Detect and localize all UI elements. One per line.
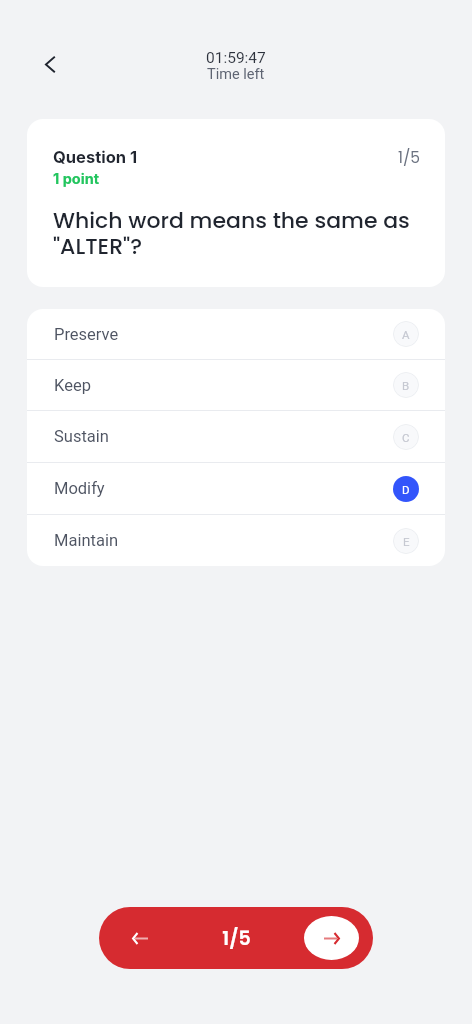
button[interactable]: Keep [27,360,445,410]
staticText: Modify [54,479,105,498]
staticText: Preserve [54,325,119,344]
staticText: Which word means the same as "ALTER"? [53,205,421,262]
staticText: E [403,535,410,548]
button[interactable]: Sustain [27,411,445,462]
staticText: Keep [54,376,91,395]
staticText: 1/5 [398,147,421,169]
button[interactable]: Next question [304,916,359,960]
staticText: Sustain [54,427,109,446]
staticText: D [402,483,410,496]
staticText: Maintain [54,531,119,550]
staticText: A [402,328,410,341]
staticText: 1 point [53,170,99,188]
button[interactable]: Preserve [27,309,445,359]
button[interactable]: Previous question [121,919,159,957]
staticText: Question 1 [53,147,138,167]
button[interactable]: Modify [27,463,445,514]
staticText: 01:59:47 [206,49,266,67]
button[interactable]: Maintain [27,515,445,566]
staticText: B [402,379,410,392]
button[interactable]: Back [30,46,70,86]
staticText: 1/5 [222,925,251,952]
staticText: C [402,431,410,444]
staticText: Time left [207,66,265,83]
